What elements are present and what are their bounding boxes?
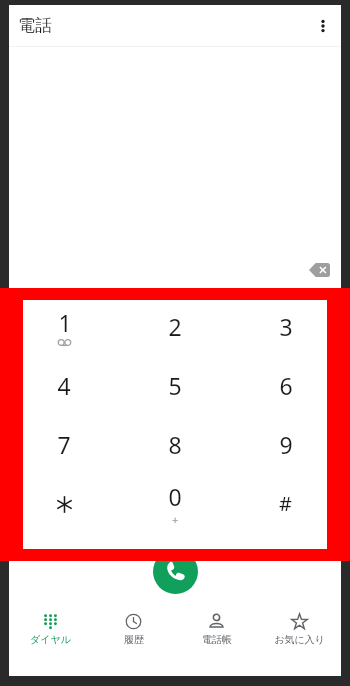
- button[interactable]: [9, 474, 119, 533]
- staticText: 電話: [18, 15, 52, 36]
- staticText: 0: [168, 481, 182, 512]
- button[interactable]: ダイヤル: [9, 605, 92, 653]
- button[interactable]: Backspace: [302, 258, 336, 282]
- button[interactable]: 3: [230, 297, 341, 356]
- staticText: 9: [279, 429, 293, 460]
- staticText: #: [279, 490, 292, 517]
- staticText: 電話帳: [202, 633, 232, 646]
- button[interactable]: 2: [119, 297, 230, 356]
- button[interactable]: More options: [306, 9, 340, 43]
- button[interactable]: 電話帳: [175, 605, 258, 653]
- staticText: 1: [58, 307, 72, 338]
- button[interactable]: お気に入り: [258, 605, 341, 653]
- staticText: 4: [57, 370, 71, 401]
- staticText: 3: [279, 311, 293, 342]
- button[interactable]: 4: [9, 356, 119, 415]
- button[interactable]: #: [230, 474, 341, 533]
- button[interactable]: 9: [230, 415, 341, 474]
- staticText: +: [172, 512, 179, 527]
- button[interactable]: Call: [153, 549, 198, 594]
- button[interactable]: 6: [230, 356, 341, 415]
- staticText: 履歴: [124, 633, 144, 646]
- button[interactable]: 8: [119, 415, 230, 474]
- button[interactable]: 5: [119, 356, 230, 415]
- button[interactable]: 履歴: [92, 605, 175, 653]
- button[interactable]: 0: [119, 474, 230, 533]
- staticText: 5: [168, 370, 182, 401]
- staticText: 6: [279, 370, 293, 401]
- staticText: 2: [168, 311, 182, 342]
- staticText: 7: [57, 429, 71, 460]
- staticText: ダイヤル: [30, 633, 71, 646]
- staticText: お気に入り: [274, 633, 325, 646]
- button[interactable]: 7: [9, 415, 119, 474]
- button[interactable]: 1: [9, 297, 119, 356]
- staticText: 8: [168, 429, 182, 460]
